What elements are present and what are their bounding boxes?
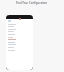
button[interactable] xyxy=(6,30,33,33)
button[interactable] xyxy=(6,28,33,31)
staticText: Find Your Configuration xyxy=(16,1,48,5)
button[interactable] xyxy=(6,25,33,28)
button[interactable] xyxy=(6,49,33,52)
button[interactable] xyxy=(6,23,33,26)
button[interactable] xyxy=(6,33,33,36)
button[interactable] xyxy=(6,46,33,49)
button[interactable] xyxy=(6,41,33,44)
button[interactable] xyxy=(6,15,33,19)
button[interactable] xyxy=(6,36,33,39)
button[interactable] xyxy=(6,43,33,46)
button[interactable] xyxy=(6,38,33,41)
